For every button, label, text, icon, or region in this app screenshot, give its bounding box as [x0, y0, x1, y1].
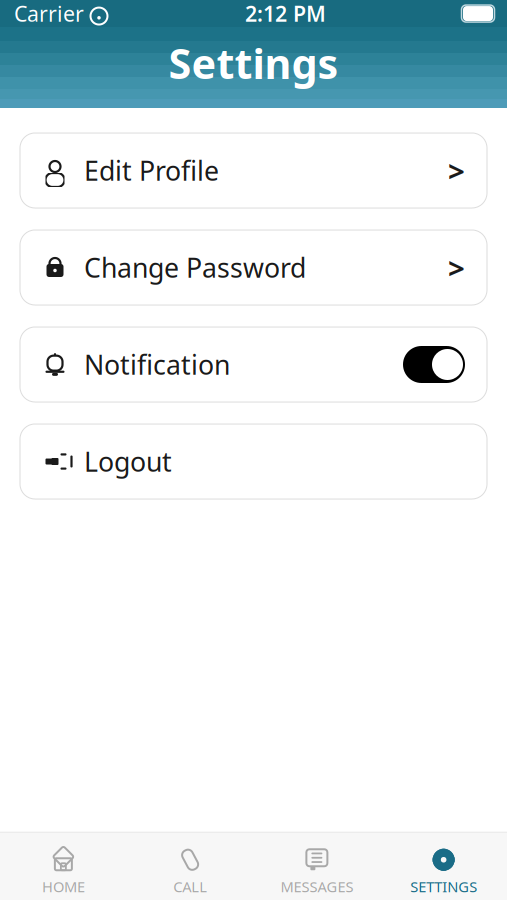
staticText: CALL — [173, 877, 207, 896]
staticText: SETTINGS — [410, 877, 477, 896]
staticText: 2:12 PM — [245, 0, 326, 28]
button[interactable]: Edit Profile — [20, 133, 487, 208]
staticText: HOME — [42, 877, 85, 896]
staticText: Logout — [84, 444, 172, 479]
button[interactable]: SETTINGS — [380, 842, 507, 900]
staticText: Edit Profile — [84, 153, 219, 188]
button[interactable]: CALL — [127, 842, 254, 900]
staticText: MESSAGES — [280, 877, 353, 896]
button[interactable]: Notification — [20, 327, 487, 402]
staticText: > — [448, 151, 465, 190]
staticText: Carrier — [14, 0, 84, 28]
staticText: Settings — [168, 36, 338, 90]
staticText: > — [448, 248, 465, 287]
button[interactable]: Change Password — [20, 230, 487, 305]
button[interactable]: MESSAGES — [253, 842, 380, 900]
staticText: Change Password — [84, 250, 306, 285]
button[interactable]: HOME — [0, 842, 127, 900]
staticText: Notification — [84, 347, 230, 382]
button[interactable]: Logout — [20, 424, 487, 499]
